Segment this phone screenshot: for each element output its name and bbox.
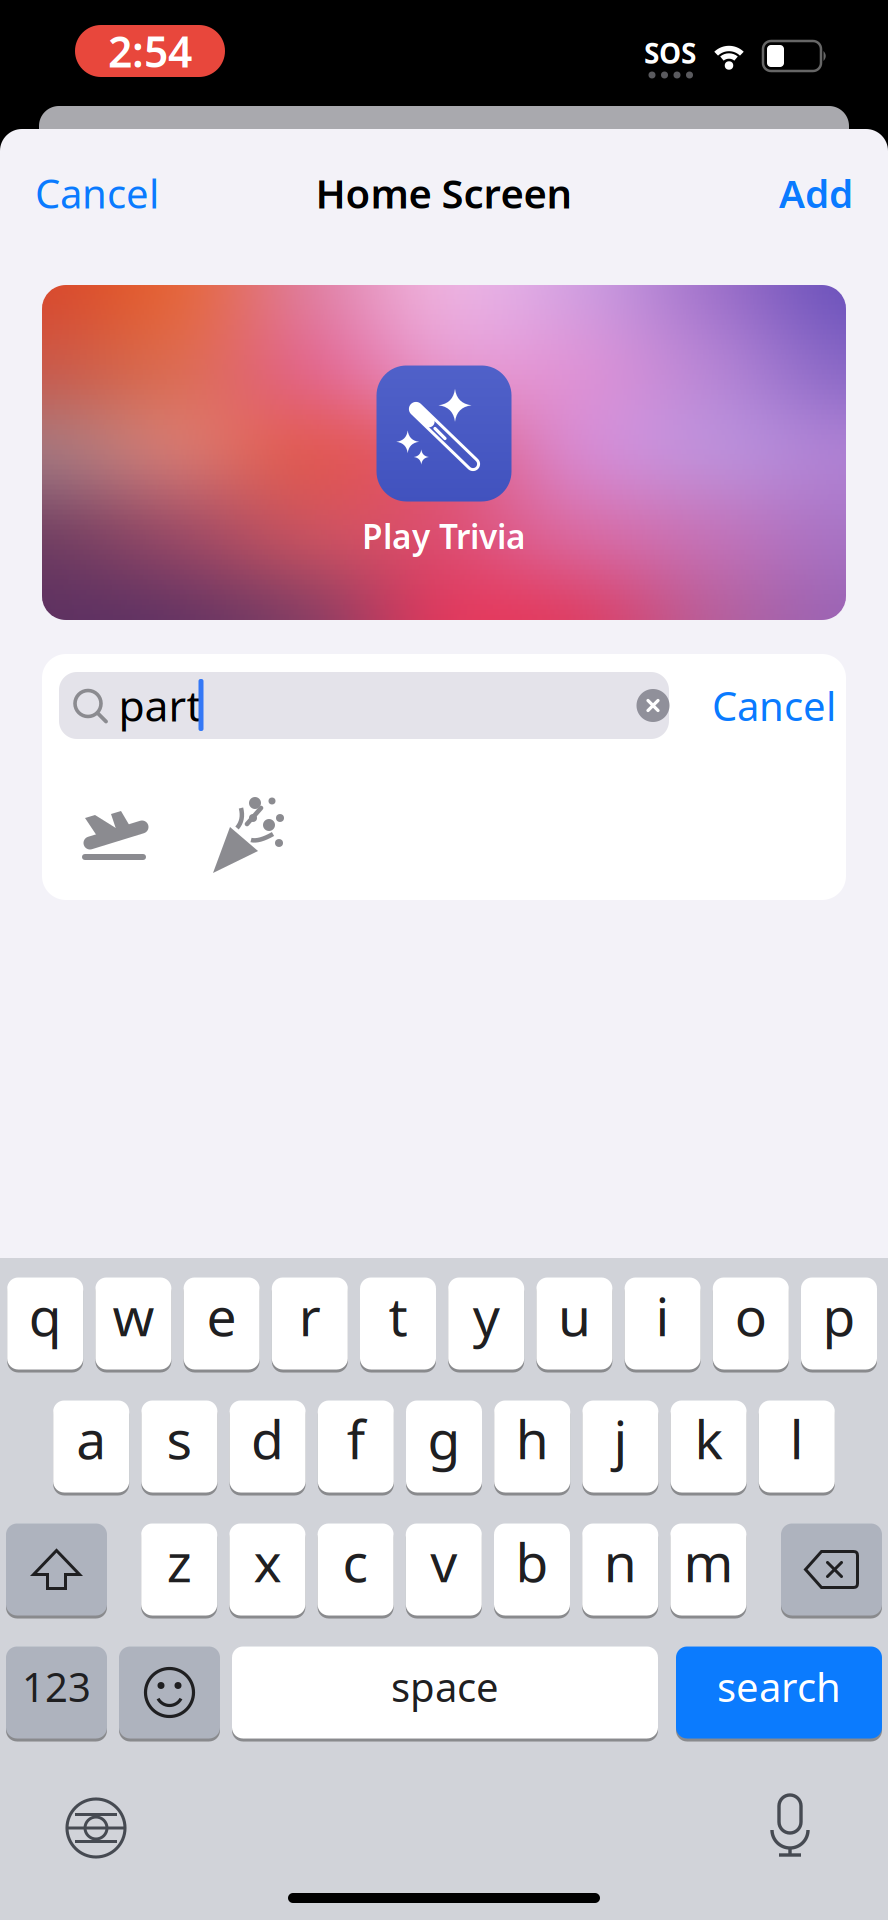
staticText: Home Screen bbox=[315, 166, 572, 219]
staticText: x bbox=[253, 1526, 281, 1597]
staticText: Cancel bbox=[712, 679, 836, 732]
button[interactable]: search bbox=[676, 1645, 882, 1740]
staticText: m bbox=[683, 1526, 733, 1597]
staticText: r bbox=[299, 1280, 321, 1351]
staticText: a bbox=[76, 1403, 106, 1474]
button[interactable]: Dictation bbox=[763, 1793, 817, 1859]
button[interactable]: a bbox=[53, 1399, 129, 1494]
button[interactable]: p bbox=[801, 1276, 877, 1371]
staticText: b bbox=[515, 1526, 548, 1597]
staticText: n bbox=[604, 1526, 637, 1597]
button[interactable]: 123 bbox=[6, 1645, 107, 1740]
button[interactable]: n bbox=[582, 1522, 658, 1617]
button[interactable]: m bbox=[670, 1522, 746, 1617]
staticText: part bbox=[118, 677, 201, 733]
button[interactable]: Delete bbox=[781, 1522, 882, 1617]
button[interactable]: c bbox=[318, 1522, 394, 1617]
button[interactable]: s bbox=[141, 1399, 217, 1494]
button[interactable]: j bbox=[582, 1399, 658, 1494]
button[interactable]: y bbox=[448, 1276, 524, 1371]
staticText: j bbox=[613, 1403, 627, 1474]
button[interactable]: Return to call bbox=[75, 23, 225, 79]
staticText: 123 bbox=[22, 1660, 91, 1713]
button[interactable]: x bbox=[229, 1522, 305, 1617]
staticText: e bbox=[207, 1280, 237, 1351]
button[interactable]: z bbox=[141, 1522, 217, 1617]
staticText: space bbox=[391, 1660, 499, 1713]
button[interactable]: f bbox=[318, 1399, 394, 1494]
staticText: g bbox=[427, 1403, 460, 1474]
staticText: s bbox=[166, 1403, 192, 1474]
staticText: Add bbox=[779, 167, 853, 219]
button[interactable]: Next keyboard bbox=[65, 1797, 127, 1859]
button[interactable]: e bbox=[184, 1276, 260, 1371]
button[interactable]: g bbox=[406, 1399, 482, 1494]
staticText: u bbox=[558, 1280, 591, 1351]
button[interactable]: d bbox=[230, 1399, 306, 1494]
button[interactable]: t bbox=[360, 1276, 436, 1371]
staticText: d bbox=[251, 1403, 284, 1474]
staticText: z bbox=[167, 1526, 192, 1597]
button[interactable]: q bbox=[7, 1276, 83, 1371]
button[interactable]: Shift bbox=[6, 1522, 107, 1617]
button[interactable]: b bbox=[494, 1522, 570, 1617]
staticText: t bbox=[388, 1280, 407, 1351]
button[interactable]: Emoji bbox=[119, 1645, 220, 1740]
staticText: w bbox=[112, 1280, 154, 1351]
button[interactable]: Cancel bbox=[35, 166, 159, 219]
staticText: Cancel bbox=[35, 166, 159, 219]
staticText: SOS bbox=[644, 34, 696, 72]
staticText: i bbox=[656, 1280, 670, 1351]
button[interactable]: w bbox=[95, 1276, 171, 1371]
button[interactable]: i bbox=[625, 1276, 701, 1371]
staticText: l bbox=[790, 1403, 804, 1474]
staticText: c bbox=[343, 1526, 369, 1597]
staticText: q bbox=[29, 1280, 62, 1351]
button[interactable]: Add bbox=[779, 167, 853, 219]
button[interactable]: k bbox=[671, 1399, 747, 1494]
button[interactable]: o bbox=[713, 1276, 789, 1371]
staticText: y bbox=[473, 1280, 500, 1351]
staticText: p bbox=[822, 1280, 855, 1351]
staticText: h bbox=[516, 1403, 549, 1474]
button[interactable]: Party popper emoji bbox=[211, 796, 283, 876]
staticText: 2:54 bbox=[108, 23, 192, 79]
button[interactable]: part bbox=[59, 672, 669, 739]
staticText: k bbox=[695, 1403, 723, 1474]
staticText: o bbox=[735, 1280, 767, 1351]
staticText: search bbox=[717, 1660, 841, 1713]
button[interactable]: v bbox=[406, 1522, 482, 1617]
staticText: f bbox=[347, 1403, 365, 1474]
staticText: Play Trivia bbox=[362, 514, 526, 558]
button[interactable]: u bbox=[536, 1276, 612, 1371]
button[interactable]: space bbox=[232, 1645, 658, 1740]
staticText: v bbox=[430, 1526, 457, 1597]
button[interactable]: r bbox=[272, 1276, 348, 1371]
button[interactable]: l bbox=[759, 1399, 835, 1494]
button[interactable]: h bbox=[494, 1399, 570, 1494]
button[interactable]: Airplane departure emoji bbox=[79, 806, 151, 862]
button[interactable]: Clear text bbox=[636, 689, 669, 722]
button[interactable]: Cancel bbox=[712, 679, 836, 732]
